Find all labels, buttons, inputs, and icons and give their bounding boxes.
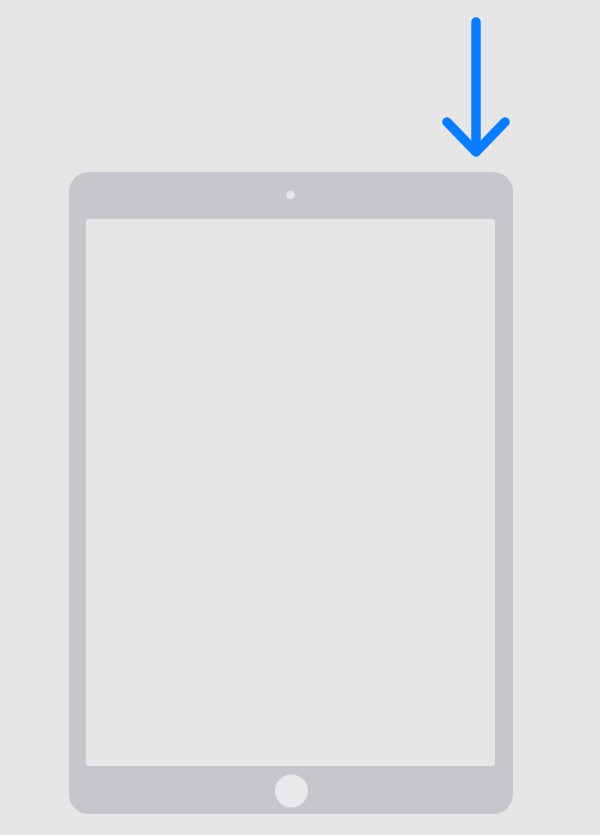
other: Tablet illustration with downward arrow … xyxy=(0,0,600,835)
